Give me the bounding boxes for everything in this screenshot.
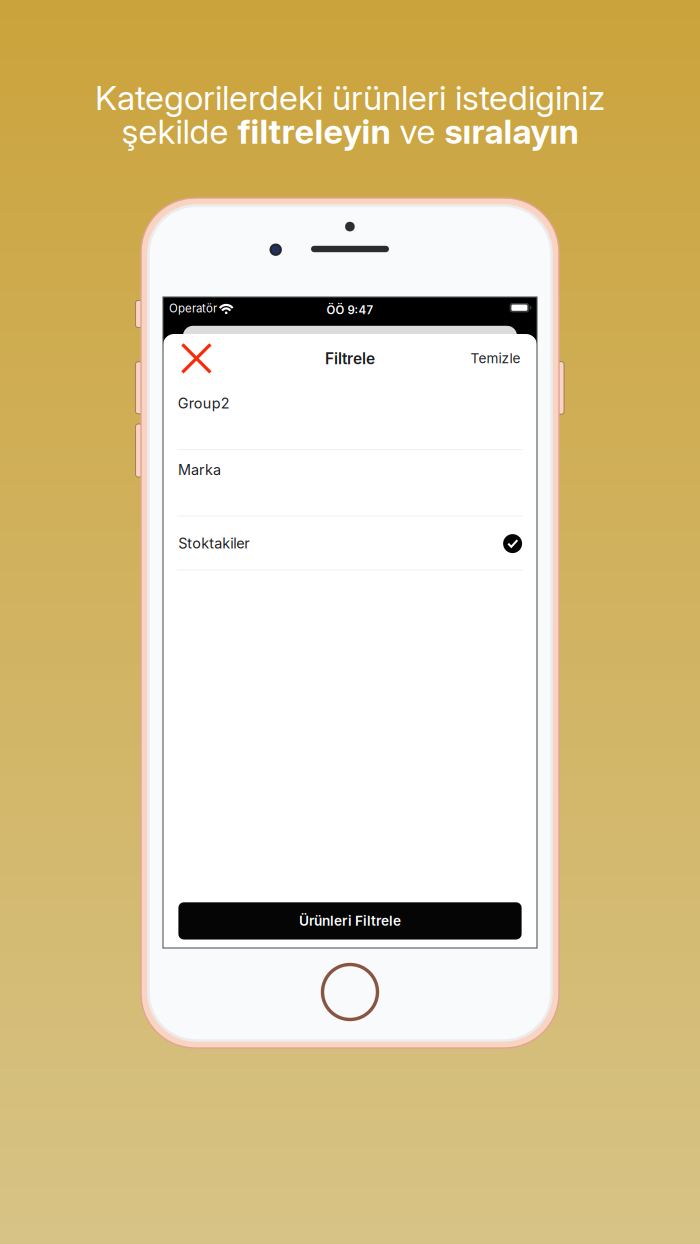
button[interactable]: Marka (163, 450, 537, 516)
staticText: ÖÖ 9:47 (326, 303, 373, 317)
staticText: şekilde filtreleyin ve sıralayın (121, 111, 578, 151)
button[interactable]: Group2 (163, 383, 537, 450)
staticText: Operatör (169, 301, 217, 315)
button[interactable]: Filtrele (302, 341, 398, 375)
staticText: Filtrele (325, 349, 375, 368)
button[interactable]: Temizle (458, 341, 532, 375)
button[interactable]: Ürünleri Filtrele (178, 902, 522, 939)
staticText: Ürünleri Filtrele (299, 913, 401, 929)
staticText: Temizle (470, 350, 520, 366)
button[interactable]: Stoktakiler (163, 516, 537, 570)
staticText: Marka (178, 461, 221, 478)
button[interactable]: Kapat (170, 338, 222, 378)
staticText: Stoktakiler (178, 534, 249, 552)
staticText: Kategorilerdeki ürünleri istediginiz (95, 77, 605, 118)
staticText: Group2 (178, 395, 230, 412)
